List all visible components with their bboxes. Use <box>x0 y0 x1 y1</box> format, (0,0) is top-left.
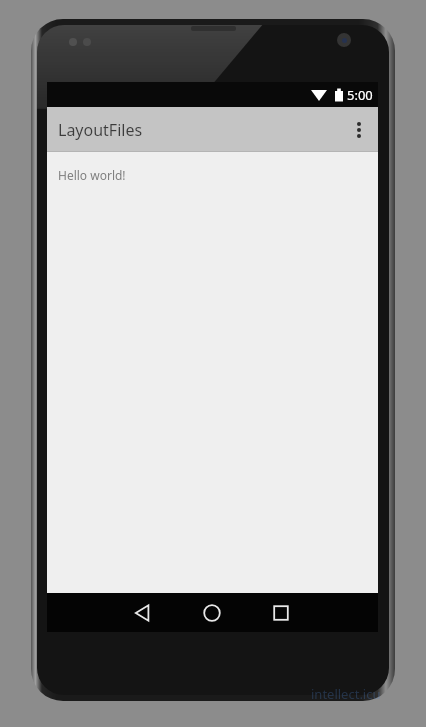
button[interactable]: Recent apps <box>259 593 303 632</box>
staticText: intellect.icu <box>311 685 381 703</box>
staticText: 5:00 <box>347 86 373 104</box>
button[interactable]: Back <box>121 593 165 632</box>
staticText: Hello world! <box>58 167 126 183</box>
button[interactable]: Home <box>190 593 234 632</box>
button[interactable]: More options <box>340 107 378 152</box>
staticText: LayoutFiles <box>58 119 143 141</box>
